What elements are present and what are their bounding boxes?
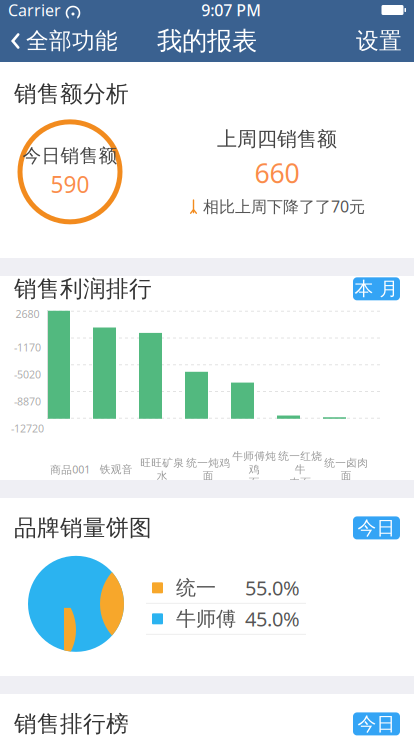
staticText: 全部功能	[26, 27, 118, 55]
staticText: 55.0%	[245, 575, 300, 601]
staticText: 590	[50, 169, 89, 199]
staticText: 牛师傅炖鸡 面	[232, 450, 276, 489]
staticText: 销售利润排行	[14, 275, 152, 303]
staticText: 商品001	[50, 462, 90, 476]
staticText: 统一炖鸡面	[186, 456, 230, 482]
staticText: -1170	[14, 340, 41, 354]
staticText: 旺旺矿泉水	[140, 456, 184, 482]
staticText: 销售额分析	[14, 80, 129, 108]
staticText: -12720	[11, 421, 44, 435]
staticText: 660	[254, 155, 299, 191]
staticText: 统一红烧牛 肉面	[278, 450, 322, 489]
staticText: 今日销售额	[22, 144, 117, 167]
staticText: -5020	[14, 367, 41, 381]
button[interactable]: 今日	[353, 712, 400, 735]
staticText: 统一	[176, 576, 216, 600]
staticText: 统一卤肉面	[324, 456, 368, 482]
staticText: 牛师傅	[176, 607, 236, 631]
staticText: 今日	[357, 516, 395, 539]
staticText: 设置	[356, 27, 402, 55]
button[interactable]: 今日	[353, 516, 400, 539]
staticText: 品牌销量饼图	[14, 514, 152, 542]
staticText: 9:07 PM	[201, 0, 261, 21]
staticText: -8870	[14, 394, 41, 408]
staticText: 45.0%	[245, 606, 300, 632]
staticText: 销售排行榜	[14, 710, 129, 736]
staticText: 我的报表	[157, 25, 257, 56]
staticText: 2680	[15, 307, 39, 321]
staticText: 铁观音	[99, 463, 132, 476]
button[interactable]: 设置	[344, 20, 414, 62]
staticText: 本 月	[354, 277, 398, 300]
staticText: 今日	[357, 712, 395, 735]
staticText: Carrier	[8, 0, 61, 21]
button[interactable]: 本 月	[353, 277, 400, 300]
button[interactable]: 全部功能	[0, 20, 128, 62]
staticText: 相比上周下降了了70元	[203, 196, 365, 217]
staticText: 上周四销售额	[217, 127, 337, 151]
